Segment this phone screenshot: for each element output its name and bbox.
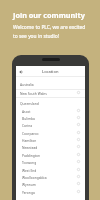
staticText: Paddington (22, 153, 41, 157)
button[interactable]: New South Wales (16, 89, 85, 96)
staticText: Ascot (22, 109, 31, 113)
button[interactable]: Carina (16, 121, 85, 128)
staticText: West End (22, 168, 37, 172)
staticText: Location (42, 69, 59, 74)
staticText: Carina (22, 123, 33, 127)
button[interactable]: West End (16, 166, 85, 173)
button[interactable]: Back (16, 67, 25, 76)
staticText: Bulimba (22, 116, 35, 120)
staticText: Australia (20, 82, 34, 86)
button[interactable]: Hamilton (16, 136, 85, 143)
staticText: Toowong (22, 160, 37, 164)
button[interactable]: Newstead (16, 143, 85, 150)
button[interactable]: Ascot (16, 107, 85, 114)
button[interactable]: Queensland (16, 99, 85, 106)
staticText: Coorparoo (22, 131, 39, 135)
button[interactable]: Bulimba (16, 114, 85, 121)
button[interactable]: Toowong (16, 158, 85, 165)
staticText: Queensland (20, 101, 39, 105)
button[interactable]: Coorparoo (16, 129, 85, 136)
button[interactable]: Paddington (16, 151, 85, 158)
staticText: Newstead (22, 145, 38, 149)
staticText: Yeronga (22, 190, 35, 194)
button[interactable]: Australia (16, 80, 85, 87)
staticText: Wynnum (22, 182, 36, 186)
button[interactable]: Woolloongabba (16, 173, 85, 180)
button[interactable]: Wynnum (16, 180, 85, 187)
staticText: New South Wales (20, 91, 47, 95)
staticText: Hamilton (22, 138, 37, 142)
staticText: Welcome to PLC, we are excited to see yo… (13, 24, 86, 39)
staticText: Woolloongabba (22, 175, 47, 179)
button[interactable]: Yeronga (16, 188, 85, 195)
staticText: Join our community (13, 10, 85, 20)
